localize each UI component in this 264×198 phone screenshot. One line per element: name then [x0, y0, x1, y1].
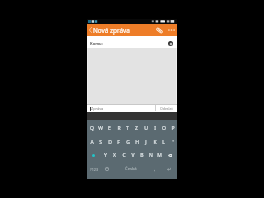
staticText: E: [108, 125, 111, 132]
button[interactable]: R: [114, 123, 123, 133]
staticText: X: [113, 152, 116, 159]
button[interactable]: Z: [132, 123, 141, 133]
staticText: G: [126, 139, 130, 146]
staticText: Nová zpráva: [93, 26, 130, 35]
staticText: P: [171, 125, 175, 132]
staticText: D: [108, 139, 112, 146]
button[interactable]: Zpět: [87, 24, 93, 36]
staticText: V: [131, 152, 135, 159]
button[interactable]: Přiložit: [154, 24, 164, 36]
button[interactable]: W: [96, 123, 105, 133]
staticText: F: [117, 139, 120, 146]
staticText: T: [126, 125, 129, 132]
staticText: Česká: [125, 166, 137, 172]
button[interactable]: Více možností: [166, 24, 176, 36]
button[interactable]: E: [105, 123, 114, 133]
button[interactable]: Komu:: [87, 36, 177, 48]
staticText: S: [99, 139, 102, 146]
button[interactable]: F: [114, 137, 123, 147]
staticText: O: [162, 125, 166, 132]
button[interactable]: Přidat příjemce: [168, 41, 173, 46]
staticText: C: [122, 152, 126, 159]
staticText: K: [153, 139, 157, 146]
staticText: M: [157, 152, 162, 159]
button[interactable]: G: [123, 137, 132, 147]
button[interactable]: X: [110, 150, 119, 160]
staticText: ': [172, 139, 174, 146]
button[interactable]: N: [146, 150, 155, 160]
staticText: Odeslat: [160, 106, 173, 111]
button[interactable]: J: [141, 137, 150, 147]
button[interactable]: M: [155, 150, 164, 160]
button[interactable]: D: [105, 137, 114, 147]
button[interactable]: ': [168, 137, 177, 147]
staticText: Y: [104, 152, 107, 159]
button[interactable]: A: [87, 137, 96, 147]
button[interactable]: I: [150, 123, 159, 133]
staticText: Komu:: [90, 41, 103, 46]
staticText: Q: [90, 125, 94, 132]
staticText: N: [149, 152, 153, 159]
button[interactable]: B: [137, 150, 146, 160]
button[interactable]: Česká: [114, 164, 148, 174]
button[interactable]: Emodži: [102, 164, 112, 174]
button[interactable]: ,: [149, 164, 160, 174]
button[interactable]: Zpráva: [87, 104, 155, 112]
staticText: L: [162, 139, 165, 146]
button[interactable]: Y: [101, 150, 110, 160]
staticText: H: [135, 139, 139, 146]
button[interactable]: T: [123, 123, 132, 133]
button[interactable]: L: [159, 137, 168, 147]
button[interactable]: O: [159, 123, 168, 133]
button[interactable]: V: [128, 150, 137, 160]
button[interactable]: Q: [87, 123, 96, 133]
staticText: A: [90, 139, 94, 146]
staticText: ↵: [167, 166, 172, 172]
button[interactable]: Smazat: [165, 150, 175, 160]
staticText: J: [145, 139, 147, 146]
button[interactable]: U: [141, 123, 150, 133]
button[interactable]: P: [168, 123, 177, 133]
staticText: W: [98, 125, 103, 132]
button[interactable]: Odeslat: [156, 104, 177, 112]
button[interactable]: H: [132, 137, 141, 147]
button[interactable]: K: [150, 137, 159, 147]
staticText: Z: [135, 125, 138, 132]
button[interactable]: Shift: [88, 150, 98, 160]
staticText: Zpráva: [91, 106, 104, 111]
staticText: ?123: [90, 167, 99, 172]
button[interactable]: S: [96, 137, 105, 147]
button[interactable]: ?123: [88, 164, 101, 174]
staticText: U: [144, 125, 148, 132]
staticText: I: [154, 125, 156, 132]
staticText: B: [140, 152, 144, 159]
staticText: ,: [154, 166, 156, 172]
staticText: R: [117, 125, 121, 132]
button[interactable]: Enter: [163, 164, 175, 174]
button[interactable]: C: [119, 150, 128, 160]
